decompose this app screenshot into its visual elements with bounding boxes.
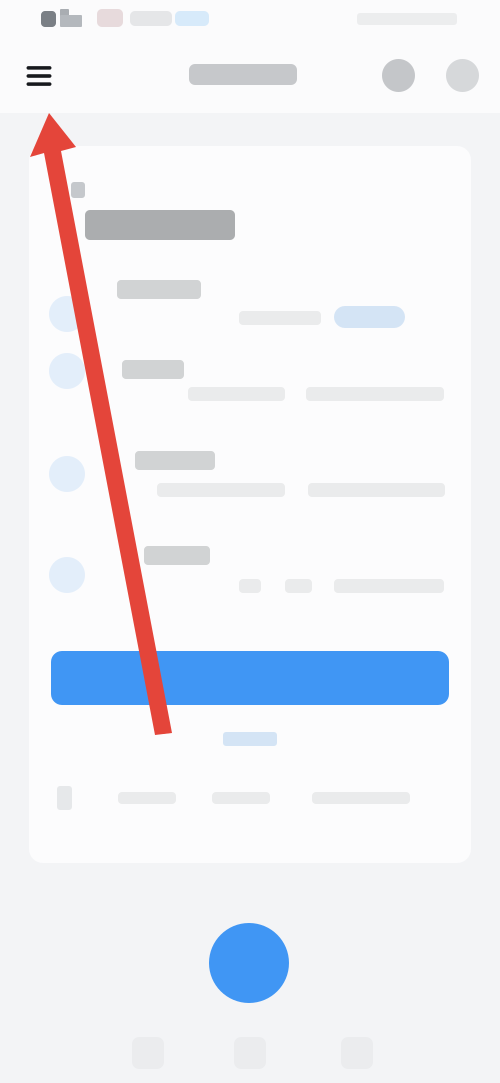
button[interactable]: Discover bbox=[205, 1023, 295, 1083]
button[interactable] bbox=[29, 146, 471, 863]
button[interactable] bbox=[51, 651, 449, 705]
button[interactable] bbox=[29, 146, 471, 863]
button[interactable]: Menu bbox=[17, 54, 61, 98]
button[interactable]: More bbox=[215, 724, 285, 754]
button[interactable] bbox=[29, 146, 471, 863]
button[interactable]: Profile bbox=[312, 1023, 402, 1083]
button[interactable]: More options bbox=[438, 51, 487, 100]
button[interactable]: Home bbox=[103, 1023, 193, 1083]
button[interactable] bbox=[29, 146, 471, 863]
button[interactable]: Search bbox=[374, 51, 423, 100]
button[interactable]: New post bbox=[209, 923, 289, 1003]
